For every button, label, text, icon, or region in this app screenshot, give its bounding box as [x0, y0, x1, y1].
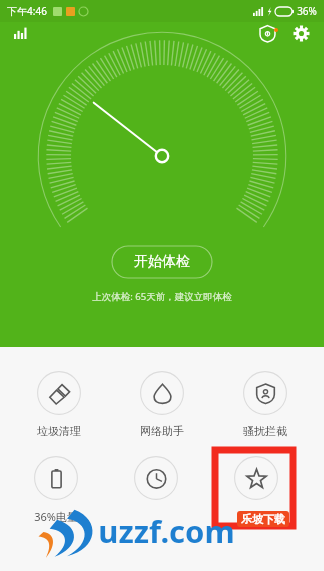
button[interactable]: Settings — [286, 22, 316, 44]
button[interactable]: 骚扰拦截 — [221, 369, 309, 440]
staticText: 下午4:46 — [7, 4, 47, 18]
button[interactable]: 36%电量 — [12, 454, 100, 526]
staticText: 垃圾清理 — [37, 424, 81, 438]
button[interactable]: Statistics — [6, 22, 36, 44]
staticText: 开始体检 — [134, 253, 190, 271]
staticText: 36%电量 — [34, 509, 78, 524]
button[interactable]: Tool — [212, 454, 300, 511]
staticText: 乐坡下载 — [241, 512, 285, 526]
button[interactable]: Security notice — [252, 22, 282, 44]
button[interactable]: 网络助手 — [118, 369, 206, 440]
button[interactable]: 开始体检 — [111, 245, 213, 279]
button[interactable]: Tool — [112, 454, 200, 511]
staticText: 网络助手 — [140, 424, 184, 438]
button[interactable]: 垃圾清理 — [15, 369, 103, 440]
staticText: uzzf.com — [98, 510, 235, 552]
staticText: 骚扰拦截 — [243, 424, 287, 438]
staticText: 上次体检: 65天前，建议立即体检 — [92, 290, 232, 303]
staticText: 36% — [297, 4, 317, 18]
